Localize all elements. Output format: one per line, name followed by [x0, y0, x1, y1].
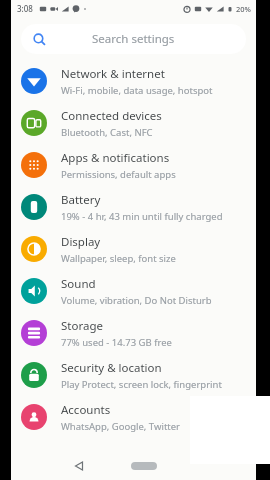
staticText: Bluetooth, Cast, NFC	[61, 126, 153, 139]
staticText: 77% used - 14.73 GB free	[61, 336, 172, 349]
button[interactable]: Storage	[11, 312, 256, 354]
staticText: Wi-Fi, mobile, data usage, hotspot	[61, 84, 213, 97]
staticText: Wallpaper, sleep, font size	[61, 252, 176, 265]
staticText: 19% - 4 hr, 43 min until fully charged	[61, 210, 223, 223]
staticText: Security & location	[61, 360, 162, 376]
staticText: Connected devices	[61, 108, 162, 124]
staticText: Display	[61, 234, 101, 250]
staticText: Permissions, default apps	[61, 168, 176, 181]
button[interactable]: Home	[127, 457, 161, 475]
staticText: Accounts	[61, 402, 111, 418]
staticText: WhatsApp, Google, Twitter	[61, 420, 181, 433]
button[interactable]: Network & internet	[11, 60, 256, 102]
staticText: Storage	[61, 318, 103, 334]
button[interactable]: Back	[69, 456, 89, 476]
staticText: Battery	[61, 192, 101, 208]
button[interactable]: Accounts	[11, 396, 256, 438]
button[interactable]: Sound	[11, 270, 256, 312]
button[interactable]: Connected devices	[11, 102, 256, 144]
staticText: Play Protect, screen lock, fingerprint	[61, 378, 222, 391]
button[interactable]: Battery	[11, 186, 256, 228]
button[interactable]: Display	[11, 228, 256, 270]
button[interactable]: Security & location	[11, 354, 256, 396]
button[interactable]: Apps & notifications	[11, 144, 256, 186]
staticText: Sound	[61, 276, 96, 292]
staticText: Apps & notifications	[61, 150, 170, 166]
staticText: Network & internet	[61, 66, 165, 82]
staticText: Search settings	[92, 31, 175, 47]
staticText: Volume, vibration, Do Not Disturb	[61, 294, 212, 307]
staticText: 3:08	[17, 3, 33, 14]
staticText: 20%	[236, 4, 251, 14]
button[interactable]: Search settings	[21, 24, 246, 54]
